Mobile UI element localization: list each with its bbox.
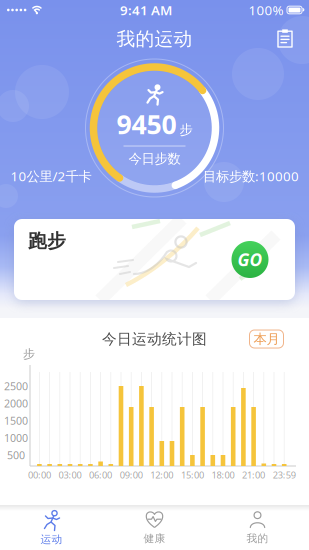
staticText: 12:00 bbox=[150, 469, 173, 481]
staticText: 09:00 bbox=[120, 469, 143, 481]
staticText: 9:41 AM bbox=[120, 1, 172, 19]
staticText: 今日运动统计图 bbox=[102, 330, 207, 348]
staticText: 跑步 bbox=[28, 229, 66, 252]
button[interactable]: 运动 bbox=[0, 506, 103, 546]
staticText: 10公里/2千卡 bbox=[10, 167, 91, 185]
staticText: 本月 bbox=[253, 331, 279, 347]
staticText: 步 bbox=[179, 121, 192, 138]
staticText: 步 bbox=[23, 347, 35, 361]
staticText: 06:00 bbox=[89, 469, 112, 481]
button[interactable]: 本月 bbox=[249, 329, 284, 348]
staticText: 9450 bbox=[116, 106, 176, 141]
staticText: 03:00 bbox=[58, 469, 81, 481]
staticText: 21:00 bbox=[242, 469, 265, 481]
staticText: 15:00 bbox=[181, 469, 204, 481]
button[interactable]: 我的 bbox=[206, 507, 309, 545]
staticText: 00:00 bbox=[28, 469, 51, 481]
button[interactable]: 运动记录 bbox=[270, 22, 300, 55]
button[interactable]: 开始跑步 bbox=[14, 219, 295, 300]
staticText: 今日步数 bbox=[128, 150, 180, 167]
staticText: 健康 bbox=[143, 532, 165, 545]
button[interactable]: 健康 bbox=[103, 507, 206, 545]
staticText: 1500 bbox=[4, 413, 28, 428]
staticText: 18:00 bbox=[211, 469, 234, 481]
staticText: 23:59 bbox=[273, 469, 296, 481]
staticText: 100% bbox=[248, 1, 283, 19]
staticText: 500 bbox=[7, 448, 25, 462]
staticText: 2000 bbox=[4, 396, 28, 410]
staticText: GO bbox=[237, 248, 262, 271]
staticText: 我的 bbox=[246, 532, 268, 545]
staticText: 运动 bbox=[40, 533, 62, 546]
staticText: 我的运动 bbox=[116, 27, 192, 50]
staticText: 1000 bbox=[4, 431, 28, 445]
staticText: 目标步数:10000 bbox=[203, 167, 299, 185]
staticText: 2500 bbox=[4, 379, 28, 393]
